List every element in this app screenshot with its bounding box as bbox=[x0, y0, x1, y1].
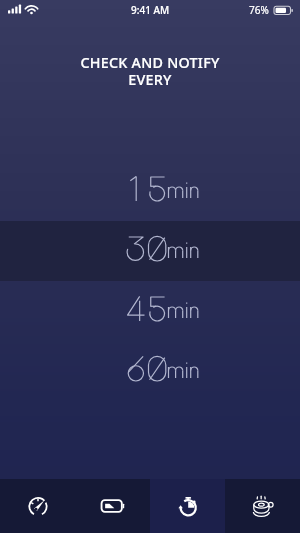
button[interactable]: Battery bbox=[75, 479, 150, 533]
button[interactable]: 60 min bbox=[0, 341, 300, 401]
button[interactable]: Coffee bbox=[225, 479, 300, 533]
staticText: CHECK AND NOTIFY EVERY bbox=[0, 53, 300, 89]
button[interactable]: Speed bbox=[0, 479, 75, 533]
button[interactable]: 30 min bbox=[0, 221, 300, 281]
staticText: 76% bbox=[249, 3, 269, 17]
button[interactable]: 15 min bbox=[0, 161, 300, 221]
button[interactable]: Timer bbox=[150, 479, 225, 533]
staticText: 9:41 AM bbox=[131, 3, 170, 17]
button[interactable]: 45 min bbox=[0, 281, 300, 341]
